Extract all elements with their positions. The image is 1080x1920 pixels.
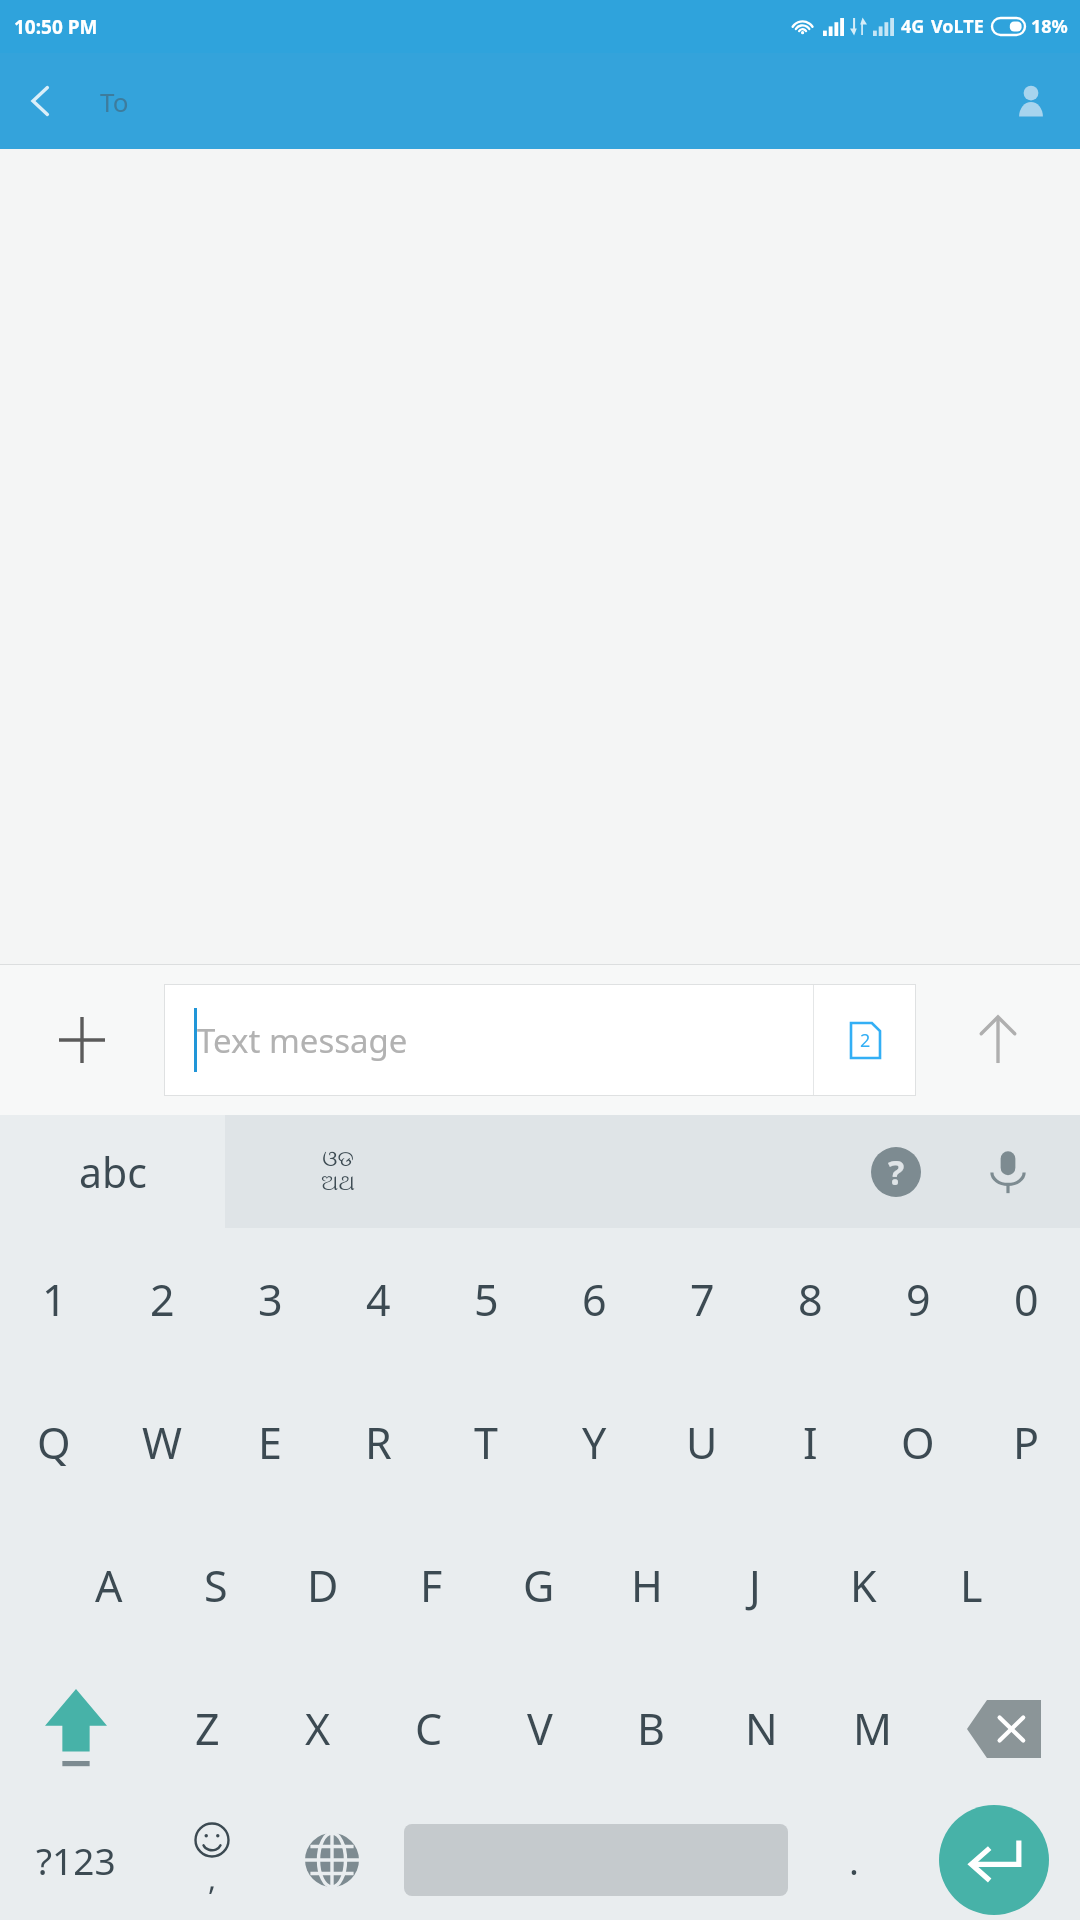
button[interactable]: Y — [540, 1371, 648, 1514]
staticText: H — [631, 1556, 663, 1615]
staticText: 9 — [906, 1270, 931, 1329]
button[interactable]: 1 — [0, 1228, 108, 1371]
staticText: I — [803, 1413, 818, 1472]
button[interactable]: B — [595, 1657, 706, 1800]
button[interactable]: A — [55, 1514, 162, 1657]
button[interactable]: O — [864, 1371, 972, 1514]
button[interactable]: Backspace — [928, 1657, 1080, 1800]
button[interactable]: 6 — [540, 1228, 648, 1371]
staticText: E — [258, 1413, 282, 1472]
staticText: 7 — [690, 1270, 715, 1329]
staticText: V — [527, 1699, 553, 1758]
button[interactable]: N — [706, 1657, 817, 1800]
button[interactable]: 7 — [648, 1228, 756, 1371]
staticText: , — [208, 1858, 217, 1899]
staticText: F — [420, 1556, 443, 1615]
staticText: . — [849, 1835, 859, 1885]
button[interactable]: SIM 2 — [814, 984, 916, 1096]
button[interactable]: . — [800, 1800, 908, 1920]
staticText: N — [745, 1699, 778, 1758]
button[interactable]: Text message — [164, 984, 813, 1096]
button[interactable]: Contacts — [998, 68, 1064, 134]
button[interactable]: Q — [0, 1371, 108, 1514]
button[interactable]: 5 — [432, 1228, 540, 1371]
staticText: J — [749, 1556, 761, 1615]
button[interactable]: abc — [0, 1115, 225, 1228]
staticText: P — [1013, 1413, 1040, 1472]
button[interactable]: F — [377, 1514, 485, 1657]
button[interactable]: J — [701, 1514, 809, 1657]
button[interactable]: C — [373, 1657, 484, 1800]
staticText: Text message — [197, 1018, 408, 1063]
button[interactable]: Add attachment — [0, 965, 164, 1115]
staticText: To — [100, 84, 129, 119]
staticText: 1 — [42, 1270, 67, 1329]
staticText: Z — [195, 1699, 220, 1758]
staticText: A — [95, 1556, 123, 1615]
staticText: Q — [37, 1413, 71, 1472]
button[interactable]: L — [917, 1514, 1025, 1657]
button[interactable]: Help — [840, 1116, 952, 1228]
staticText: S — [204, 1556, 228, 1615]
button[interactable]: ଓଡ ଅଥ — [225, 1115, 450, 1228]
staticText: 3 — [258, 1270, 283, 1329]
staticText: L — [960, 1556, 983, 1615]
button[interactable]: 0 — [972, 1228, 1080, 1371]
staticText: O — [901, 1413, 935, 1472]
button[interactable]: 3 — [216, 1228, 324, 1371]
button[interactable]: ?123 — [0, 1800, 152, 1920]
staticText: M — [853, 1699, 893, 1758]
button[interactable]: U — [648, 1371, 756, 1514]
staticText: 4 — [366, 1270, 391, 1329]
staticText: ?123 — [36, 1835, 116, 1885]
button[interactable]: W — [108, 1371, 216, 1514]
staticText: ଓଡ ଅଥ — [321, 1148, 355, 1195]
button[interactable]: I — [756, 1371, 864, 1514]
button[interactable]: V — [484, 1657, 595, 1800]
staticText: C — [415, 1699, 443, 1758]
staticText: 18% — [1031, 14, 1068, 39]
button[interactable]: D — [269, 1514, 377, 1657]
button[interactable]: R — [324, 1371, 432, 1514]
button[interactable]: X — [262, 1657, 373, 1800]
staticText: 2 — [860, 1028, 871, 1053]
button[interactable]: P — [972, 1371, 1080, 1514]
button[interactable]: E — [216, 1371, 324, 1514]
button[interactable]: H — [593, 1514, 701, 1657]
button[interactable]: 9 — [864, 1228, 972, 1371]
staticText: G — [523, 1556, 555, 1615]
button[interactable]: 2 — [108, 1228, 216, 1371]
staticText: Y — [582, 1413, 607, 1472]
staticText: abc — [79, 1144, 147, 1200]
staticText: 4G — [901, 14, 925, 39]
staticText: X — [305, 1699, 331, 1758]
staticText: 0 — [1014, 1270, 1039, 1329]
staticText: ? — [888, 1149, 905, 1195]
button[interactable]: G — [485, 1514, 593, 1657]
button[interactable]: Emoji — [152, 1800, 272, 1920]
button[interactable]: 4 — [324, 1228, 432, 1371]
staticText: W — [142, 1413, 182, 1472]
button[interactable]: Send — [916, 965, 1080, 1115]
button[interactable]: S — [162, 1514, 269, 1657]
staticText: 6 — [582, 1270, 607, 1329]
button[interactable]: Back — [8, 68, 74, 134]
staticText: R — [365, 1413, 392, 1472]
staticText: VoLTE — [931, 14, 984, 39]
staticText: T — [474, 1413, 498, 1472]
button[interactable]: T — [432, 1371, 540, 1514]
button[interactable]: Change language — [272, 1800, 392, 1920]
button[interactable]: Voice input — [952, 1116, 1064, 1228]
staticText: 10:50 PM — [14, 14, 98, 40]
button[interactable]: 8 — [756, 1228, 864, 1371]
staticText: K — [850, 1556, 877, 1615]
button[interactable]: M — [817, 1657, 928, 1800]
button[interactable]: Z — [152, 1657, 262, 1800]
staticText: 5 — [474, 1270, 499, 1329]
button[interactable]: Enter — [939, 1805, 1049, 1915]
button[interactable]: K — [809, 1514, 917, 1657]
staticText: D — [307, 1556, 339, 1615]
button[interactable]: Shift — [0, 1657, 152, 1800]
staticText: U — [686, 1413, 718, 1472]
